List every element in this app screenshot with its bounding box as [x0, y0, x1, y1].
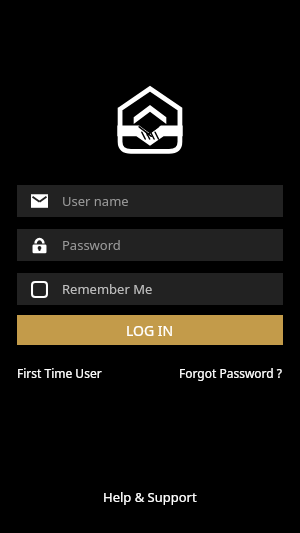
staticText: Help & Support — [103, 488, 197, 506]
other: Password — [31, 237, 48, 254]
staticText: Password — [62, 236, 121, 254]
button[interactable]: First Time User — [17, 361, 102, 385]
button[interactable]: Remember Me — [17, 273, 283, 305]
button[interactable]: Email — [17, 185, 283, 217]
other: Remember Me — [31, 281, 48, 298]
staticText: Forgot Password ? — [179, 365, 283, 381]
button[interactable]: Help & Support — [93, 484, 207, 510]
button[interactable]: Password — [17, 229, 283, 261]
button[interactable]: LOG IN — [17, 315, 283, 345]
staticText: First Time User — [17, 365, 102, 381]
button[interactable]: Forgot Password ? — [179, 361, 283, 385]
other: Email — [31, 193, 48, 210]
staticText: User name — [62, 192, 129, 210]
staticText: Remember Me — [62, 280, 153, 298]
other: App logo — [116, 86, 184, 154]
staticText: LOG IN — [126, 321, 174, 340]
